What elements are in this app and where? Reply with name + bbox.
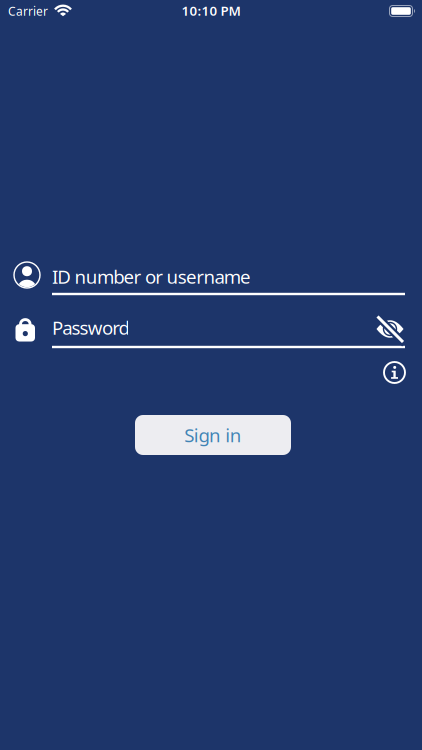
button[interactable]: Password — [12, 311, 408, 353]
button[interactable]: Sign in — [135, 415, 291, 455]
staticText: Sign in — [184, 423, 242, 447]
staticText: Carrier — [8, 3, 48, 19]
button[interactable]: Password information — [382, 360, 406, 384]
button[interactable]: ID number or username — [12, 258, 408, 300]
staticText: 10:10 PM — [181, 2, 240, 19]
button[interactable]: Show password — [372, 312, 408, 346]
staticText: Password — [52, 315, 129, 340]
staticText: ID number or username — [52, 264, 251, 289]
